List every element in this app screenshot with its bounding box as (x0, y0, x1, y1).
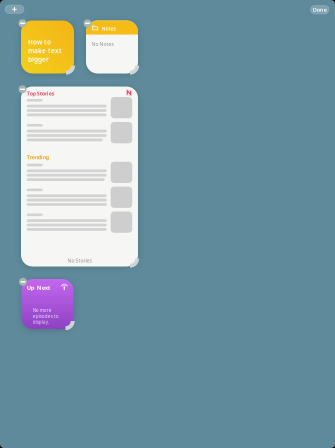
button[interactable]: Top Stories (21, 86, 142, 270)
staticText: display. (33, 319, 49, 325)
button[interactable]: Notes (86, 20, 142, 77)
button[interactable]: Done (310, 5, 329, 14)
button[interactable]: Up Next (21, 279, 77, 333)
staticText: make text (28, 46, 62, 55)
staticText: episodes to (33, 313, 59, 319)
staticText: No Notes (91, 41, 113, 47)
button[interactable]: Remove widget (18, 19, 26, 27)
button[interactable]: How to (21, 20, 78, 77)
button[interactable]: Remove widget (18, 85, 26, 93)
staticText: Top Stories (27, 90, 55, 97)
button[interactable]: Remove widget (19, 278, 27, 286)
button[interactable]: Add widget (5, 5, 24, 14)
button[interactable]: Remove widget (83, 19, 91, 27)
staticText: No Stories (67, 257, 91, 264)
staticText: How to (28, 38, 51, 46)
staticText: Done (313, 6, 327, 13)
staticText: No more (33, 307, 52, 313)
staticText: bigger (28, 55, 49, 64)
staticText: Up Next (27, 284, 51, 292)
staticText: Notes (101, 25, 115, 32)
staticText: Trending (27, 153, 49, 161)
